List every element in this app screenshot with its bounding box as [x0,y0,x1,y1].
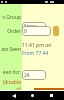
staticText: None [24,23,37,30]
button[interactable]: Back [9,91,19,100]
staticText: een for: [2,69,21,76]
staticText: From 77.44 [22,50,49,57]
staticText: 24 [24,72,30,79]
staticText: (disabled) [0,79,21,93]
staticText: Order [7,28,21,35]
button[interactable]: Home [27,91,37,100]
staticText: ast Seen [1,46,21,53]
button[interactable]: Recents [46,91,56,100]
button[interactable]: 0 [22,26,51,36]
button[interactable]: 24 [22,70,46,80]
staticText: 0 [24,28,27,35]
staticText: s Group [2,14,21,21]
button[interactable]: None [22,22,46,30]
staticText: 11:41 pm on [22,42,52,49]
